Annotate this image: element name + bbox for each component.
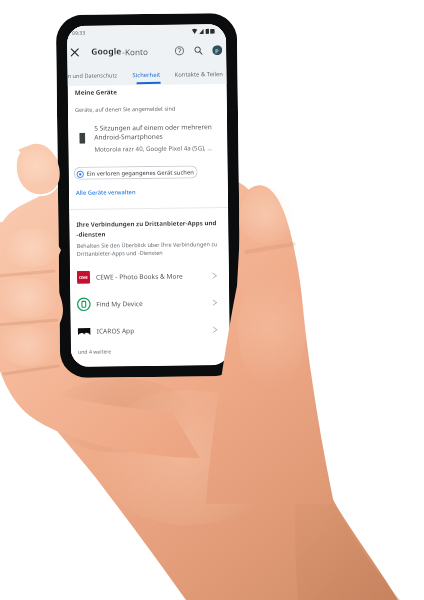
staticText: Ihre Verbindungen zu Drittanbieter-Apps … (76, 218, 216, 239)
staticText: Meine Geräte (75, 87, 118, 97)
button[interactable]: Suche (191, 43, 204, 56)
staticText: 09:33 (72, 29, 86, 36)
staticText: Motorola razr 40, Google Pixel 4a (5G), … (94, 143, 212, 153)
staticText: Behalten Sie den Überblick über Ihre Ver… (77, 240, 218, 258)
button[interactable]: 5 Sitzungen auf einem oder mehreren Andr… (79, 122, 219, 153)
staticText: Ein verloren gegangenes Gerät suchen (87, 168, 195, 178)
button[interactable]: Find My Device (77, 289, 218, 317)
button[interactable]: ICAROS App (77, 316, 219, 344)
button[interactable]: Ein verloren gegangenes Gerät suchen (74, 165, 198, 180)
button[interactable]: Hilfe (172, 43, 185, 57)
staticText: Find My Device (96, 299, 143, 309)
button[interactable]: Profil (212, 45, 222, 55)
staticText: und 4 weitere (78, 347, 112, 355)
staticText: ICAROS App (97, 326, 135, 336)
staticText: CEWE (79, 276, 88, 280)
staticText: Google (91, 45, 122, 58)
button[interactable]: Kontakte & Teilen (174, 70, 224, 79)
staticText: -Konto (122, 46, 148, 57)
staticText: CEWE - Photo Books & More (96, 272, 183, 282)
button[interactable]: Alle Geräte verwalten (76, 188, 136, 197)
staticText: 5 Sitzungen auf einem oder mehreren Andr… (94, 122, 212, 142)
button[interactable]: en und Datenschutz (67, 71, 118, 80)
button[interactable]: Sicherheit (132, 71, 161, 79)
button[interactable]: Schließen (67, 45, 81, 59)
button[interactable]: CEWE (77, 262, 218, 290)
staticText: Geräte, auf denen Sie angemeldet sind (75, 105, 176, 113)
staticText: P (215, 47, 219, 54)
